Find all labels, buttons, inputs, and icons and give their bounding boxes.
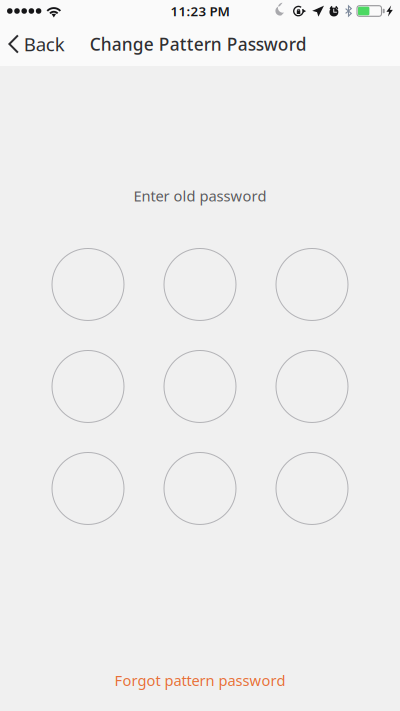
- button[interactable]: Pattern dot: [164, 248, 236, 320]
- button[interactable]: Pattern dot: [276, 452, 348, 524]
- button[interactable]: Pattern dot: [164, 452, 236, 524]
- button[interactable]: Pattern dot: [52, 452, 124, 524]
- button[interactable]: Pattern dot: [164, 350, 236, 422]
- staticText: Change Pattern Password: [90, 32, 307, 55]
- staticText: Enter old password: [133, 186, 266, 205]
- staticText: 11:23 PM: [170, 2, 229, 20]
- button[interactable]: Pattern dot: [276, 350, 348, 422]
- button[interactable]: Back: [0, 22, 73, 66]
- button[interactable]: Pattern dot: [276, 248, 348, 320]
- staticText: Back: [24, 32, 65, 56]
- button[interactable]: Pattern dot: [52, 248, 124, 320]
- button[interactable]: Pattern dot: [52, 350, 124, 422]
- button[interactable]: Forgot pattern password: [114, 662, 285, 698]
- staticText: Forgot pattern password: [114, 670, 285, 690]
